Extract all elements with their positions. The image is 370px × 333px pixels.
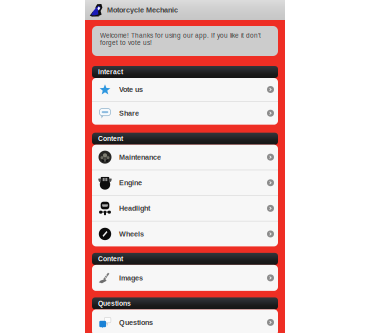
staticText: Questions <box>98 300 131 307</box>
button[interactable]: Maintenance <box>92 145 278 170</box>
staticText: Welcome! Thanks for using our app. If yo… <box>100 32 261 46</box>
button[interactable]: Questions <box>92 309 278 333</box>
staticText: Content <box>98 135 123 142</box>
staticText: Maintenance <box>119 153 161 161</box>
staticText: Share <box>119 109 139 117</box>
button[interactable]: Headlight <box>92 196 278 221</box>
staticText: Engine <box>119 179 142 187</box>
button[interactable]: Vote us <box>92 78 278 101</box>
button[interactable]: Engine <box>92 170 278 195</box>
staticText: Headlight <box>119 204 150 212</box>
staticText: Motorcycle Mechanic <box>107 6 178 14</box>
staticText: Content <box>98 255 123 263</box>
staticText: Questions <box>119 318 153 326</box>
button[interactable]: Share <box>92 102 278 125</box>
button[interactable]: Images <box>92 265 278 291</box>
staticText: Wheels <box>119 230 144 238</box>
button[interactable]: Wheels <box>92 221 278 246</box>
staticText: Images <box>119 274 143 282</box>
staticText: Interact <box>98 68 123 76</box>
staticText: Vote us <box>119 85 143 93</box>
